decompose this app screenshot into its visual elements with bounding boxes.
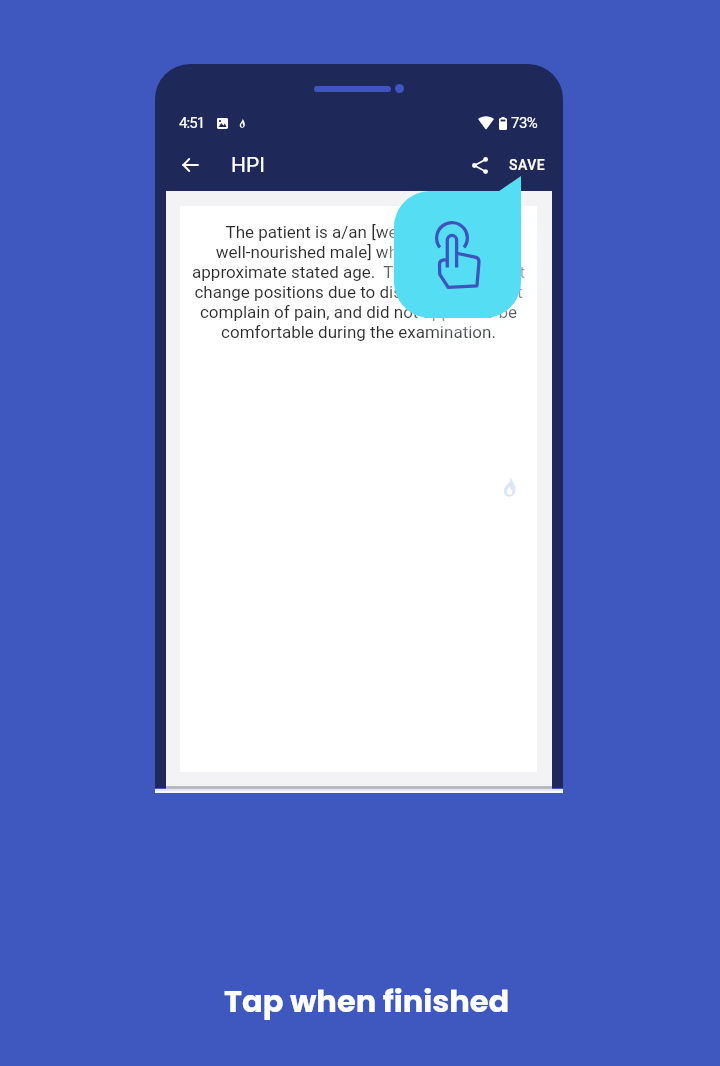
staticText: 73% <box>511 114 538 132</box>
staticText: Tap when finished <box>224 980 510 1023</box>
staticText: HPI <box>231 153 265 178</box>
staticText: 4:51 <box>179 114 205 132</box>
button[interactable]: Share <box>463 148 497 182</box>
button[interactable]: Back <box>174 149 206 181</box>
staticText: SAVE <box>509 157 546 173</box>
button[interactable]: SAVE <box>497 149 551 181</box>
staticText: The patient is a/an [well-developed, wel… <box>180 222 537 342</box>
button[interactable]: Tap when finished <box>394 176 521 318</box>
